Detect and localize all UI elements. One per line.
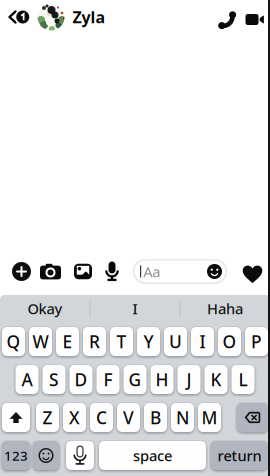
staticText: H [155, 368, 168, 391]
staticText: S [49, 368, 59, 391]
button[interactable]: H [150, 365, 173, 394]
button[interactable]: A [15, 365, 38, 394]
button[interactable]: 123 [2, 441, 30, 470]
staticText: return [217, 446, 261, 465]
button[interactable]: Okay [0, 295, 89, 322]
button[interactable]: Y [137, 327, 160, 356]
button[interactable]: L [231, 365, 254, 394]
staticText: Z [42, 406, 52, 429]
button[interactable]: I [90, 295, 180, 322]
button[interactable]: Stickers [207, 264, 222, 279]
staticText: R [89, 330, 100, 353]
button[interactable]: V [117, 403, 140, 432]
staticText: C [96, 406, 107, 429]
button[interactable]: I [191, 327, 214, 356]
button[interactable]: Photo library [74, 264, 92, 279]
button[interactable]: Send like [243, 265, 262, 283]
staticText: Okay [27, 299, 62, 318]
button[interactable]: T [110, 327, 133, 356]
button[interactable]: M [198, 403, 221, 432]
button[interactable]: Camera [40, 263, 61, 280]
button[interactable]: space [99, 441, 206, 470]
staticText: F [103, 368, 112, 391]
button[interactable]: G [123, 365, 146, 394]
button[interactable]: P [245, 327, 268, 356]
button[interactable]: U [164, 327, 187, 356]
button[interactable]: Dictation [66, 441, 94, 470]
button[interactable]: O [218, 327, 241, 356]
staticText: X [69, 406, 80, 429]
button[interactable]: C [90, 403, 113, 432]
staticText: G [128, 368, 141, 391]
staticText: O [222, 330, 236, 353]
button[interactable]: More actions [12, 262, 31, 281]
staticText: N [176, 406, 189, 429]
staticText: E [62, 330, 72, 353]
staticText: V [123, 406, 134, 429]
button[interactable]: return [211, 441, 268, 470]
staticText: 123 [4, 447, 28, 464]
button[interactable]: Haha [180, 295, 270, 322]
staticText: J [186, 368, 191, 391]
button[interactable]: F [96, 365, 119, 394]
staticText: U [169, 330, 182, 353]
staticText: A [21, 368, 32, 391]
staticText: Aa [143, 262, 160, 281]
staticText: D [74, 368, 87, 391]
button[interactable]: W [29, 327, 52, 356]
staticText: T [116, 330, 126, 353]
button[interactable]: Zyla profile [37, 3, 105, 30]
button[interactable]: Delete [237, 403, 268, 432]
button[interactable]: Video call [242, 8, 268, 30]
staticText: Haha [207, 299, 243, 318]
staticText: I [199, 330, 205, 353]
button[interactable]: J [177, 365, 200, 394]
button[interactable]: Q [2, 327, 25, 356]
button[interactable]: Audio call [215, 10, 241, 32]
button[interactable]: Shift [2, 403, 30, 432]
staticText: Y [143, 330, 153, 353]
staticText: P [251, 330, 262, 353]
button[interactable]: Emoji [33, 441, 59, 470]
staticText: I [132, 299, 137, 318]
button[interactable]: R [83, 327, 106, 356]
button[interactable]: Voice message [105, 261, 119, 281]
button[interactable]: B [144, 403, 167, 432]
button[interactable]: S [42, 365, 65, 394]
button[interactable]: E [56, 327, 79, 356]
button[interactable]: Z [36, 403, 59, 432]
staticText: B [150, 406, 161, 429]
staticText: W [32, 330, 48, 353]
button[interactable]: K [204, 365, 227, 394]
staticText: M [201, 406, 217, 429]
staticText: L [238, 368, 247, 391]
staticText: K [210, 368, 221, 391]
staticText: Q [6, 330, 20, 353]
button[interactable]: N [171, 403, 194, 432]
staticText: Zyla [72, 6, 105, 28]
button[interactable]: X [63, 403, 86, 432]
button[interactable]: Back [8, 9, 32, 25]
button[interactable]: D [69, 365, 92, 394]
button[interactable]: Message [133, 259, 227, 284]
staticText: space [133, 446, 172, 465]
